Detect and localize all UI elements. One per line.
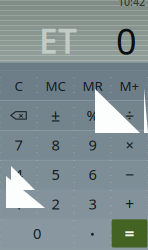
staticText: 0 xyxy=(116,17,137,65)
staticText: 0 xyxy=(33,224,41,243)
staticText: 5 xyxy=(51,165,59,184)
button[interactable]: Divide xyxy=(112,101,147,129)
staticText: 4 xyxy=(14,165,22,184)
staticText: MC xyxy=(45,77,65,95)
button[interactable]: C xyxy=(1,72,36,100)
button[interactable]: 7 xyxy=(1,131,36,159)
button[interactable]: MC xyxy=(38,72,73,100)
button[interactable]: MR xyxy=(75,72,110,100)
staticText: ± xyxy=(51,105,60,126)
staticText: ÷ xyxy=(125,105,134,126)
staticText: 1 xyxy=(14,194,22,214)
button[interactable]: Delete xyxy=(1,101,36,129)
button[interactable]: 5 xyxy=(38,160,73,188)
staticText: M+ xyxy=(119,77,139,95)
staticText: − xyxy=(125,164,134,185)
button[interactable]: Plus xyxy=(112,190,147,218)
button[interactable]: Equals xyxy=(112,219,147,247)
button[interactable]: 2 xyxy=(38,190,73,218)
button[interactable]: M+ xyxy=(112,72,147,100)
staticText: C xyxy=(14,77,22,95)
staticText: 10:42 xyxy=(118,0,145,9)
button[interactable]: 1 xyxy=(1,190,36,218)
staticText: + xyxy=(125,193,134,214)
button[interactable]: Decimal point xyxy=(75,219,110,247)
staticText: × xyxy=(18,109,23,122)
staticText: 9 xyxy=(88,135,96,155)
staticText: % xyxy=(86,106,98,125)
button[interactable]: 0 xyxy=(1,219,73,247)
button[interactable]: 3 xyxy=(75,190,110,218)
staticText: MR xyxy=(82,77,102,95)
button[interactable]: 6 xyxy=(75,160,110,188)
staticText: × xyxy=(125,135,133,155)
staticText: 8 xyxy=(51,135,59,155)
staticText: · xyxy=(89,219,95,247)
button[interactable]: 8 xyxy=(38,131,73,159)
staticText: 6 xyxy=(88,165,96,184)
staticText: ET xyxy=(39,19,77,63)
button[interactable]: Plus minus xyxy=(38,101,73,129)
staticText: = xyxy=(124,222,134,245)
button[interactable]: 4 xyxy=(1,160,36,188)
staticText: 2 xyxy=(51,194,59,214)
staticText: 7 xyxy=(14,135,22,155)
staticText: 3 xyxy=(88,194,96,214)
button[interactable]: Multiply xyxy=(112,131,147,159)
button[interactable]: Minus xyxy=(112,160,147,188)
button[interactable]: Percent xyxy=(75,101,110,129)
button[interactable]: 9 xyxy=(75,131,110,159)
